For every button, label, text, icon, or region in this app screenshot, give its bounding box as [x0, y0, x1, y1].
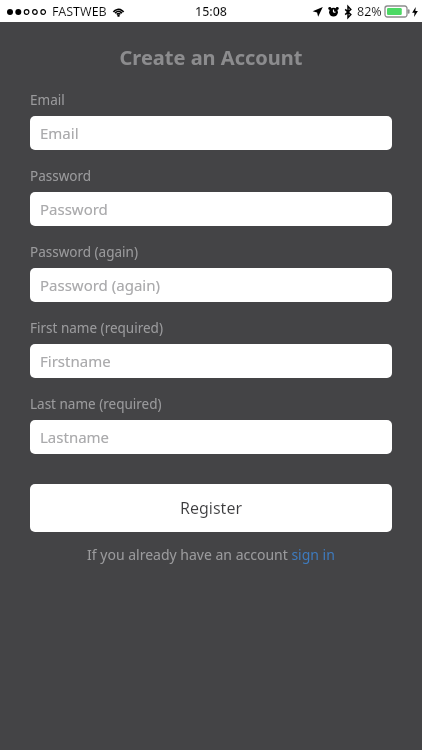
staticText: Password (again) [40, 275, 160, 295]
button[interactable]: Email [30, 116, 392, 150]
staticText: Password (again) [30, 243, 138, 261]
button[interactable]: Password [30, 192, 392, 226]
staticText: 82% [357, 3, 382, 20]
staticText: Password [30, 167, 92, 185]
button[interactable]: Firstname [30, 344, 392, 378]
staticText: Create an Account [0, 44, 422, 71]
staticText: If you already have an account sign in [87, 545, 335, 564]
staticText: FASTWEB [52, 3, 107, 20]
staticText: Email [40, 123, 79, 143]
staticText: Password [40, 199, 108, 219]
staticText: Email [30, 91, 65, 109]
button[interactable]: Password (again) [30, 268, 392, 302]
staticText: Firstname [40, 351, 111, 371]
button[interactable]: If you already have an account sign in [30, 545, 392, 564]
staticText: 15:08 [195, 3, 228, 20]
staticText: Register [180, 497, 243, 519]
staticText: Lastname [40, 427, 110, 447]
button[interactable]: Register [30, 484, 392, 532]
staticText: First name (required) [30, 319, 163, 337]
staticText: Last name (required) [30, 395, 162, 413]
button[interactable]: Lastname [30, 420, 392, 454]
